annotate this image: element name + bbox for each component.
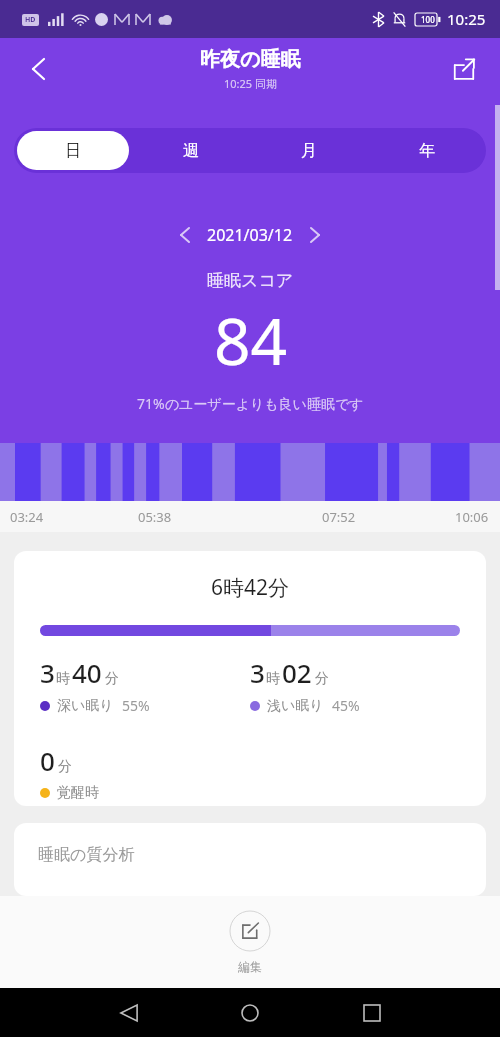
other: 編集 bbox=[229, 910, 271, 952]
staticText: 6時42分 bbox=[14, 573, 486, 602]
staticText: 84 bbox=[214, 297, 288, 384]
staticText: 年 bbox=[419, 141, 435, 161]
button[interactable]: 睡眠の質分析 bbox=[14, 823, 486, 896]
staticText: 編集 bbox=[238, 959, 262, 974]
staticText: 0 bbox=[40, 743, 55, 778]
other: 最近のアプリ bbox=[364, 1005, 380, 1021]
staticText: 40 bbox=[72, 655, 102, 690]
button[interactable]: 戻る bbox=[16, 47, 60, 91]
staticText: 10:25 同期 bbox=[224, 76, 277, 91]
button[interactable]: 年 bbox=[368, 128, 486, 173]
staticText: 日 bbox=[65, 141, 81, 161]
staticText: 05:38 bbox=[138, 508, 172, 526]
button[interactable]: 週 bbox=[132, 128, 250, 173]
staticText: 45% bbox=[332, 696, 360, 715]
staticText: 10:25 bbox=[447, 9, 486, 29]
staticText: 時 bbox=[266, 670, 280, 688]
staticText: 昨夜の睡眠 bbox=[200, 47, 301, 72]
staticText: 3 bbox=[250, 655, 265, 690]
staticText: 深い眠り bbox=[57, 697, 114, 715]
staticText: 分 bbox=[315, 670, 329, 688]
staticText: 睡眠スコア bbox=[207, 270, 294, 291]
staticText: 覚醒時 bbox=[57, 784, 99, 802]
staticText: 02 bbox=[282, 655, 312, 690]
button[interactable]: 6時42分 bbox=[14, 551, 486, 806]
staticText: 時 bbox=[56, 670, 70, 688]
staticText: 分 bbox=[105, 670, 119, 688]
button[interactable]: 月 bbox=[250, 128, 368, 173]
staticText: 03:24 bbox=[10, 508, 44, 526]
other: 戻る bbox=[120, 1004, 138, 1022]
staticText: 浅い眠り bbox=[267, 697, 324, 715]
staticText: 100 bbox=[421, 14, 435, 25]
staticText: 睡眠の質分析 bbox=[38, 845, 135, 865]
staticText: HD bbox=[25, 15, 36, 25]
staticText: 07:52 bbox=[322, 508, 356, 526]
staticText: 2021/03/12 bbox=[207, 224, 293, 246]
button[interactable]: 日 bbox=[17, 131, 129, 170]
staticText: 分 bbox=[58, 758, 72, 776]
button[interactable]: 共有 bbox=[442, 47, 486, 91]
staticText: 月 bbox=[301, 141, 317, 161]
button[interactable]: 2021/03/12 bbox=[181, 224, 319, 246]
staticText: 71%のユーザーよりも良い睡眠です bbox=[137, 394, 364, 413]
other: ホーム bbox=[241, 1004, 259, 1022]
button[interactable]: 編集 bbox=[207, 904, 293, 980]
staticText: 週 bbox=[183, 141, 199, 161]
staticText: 10:06 bbox=[455, 508, 489, 526]
staticText: 3 bbox=[40, 655, 55, 690]
staticText: 55% bbox=[122, 696, 150, 715]
